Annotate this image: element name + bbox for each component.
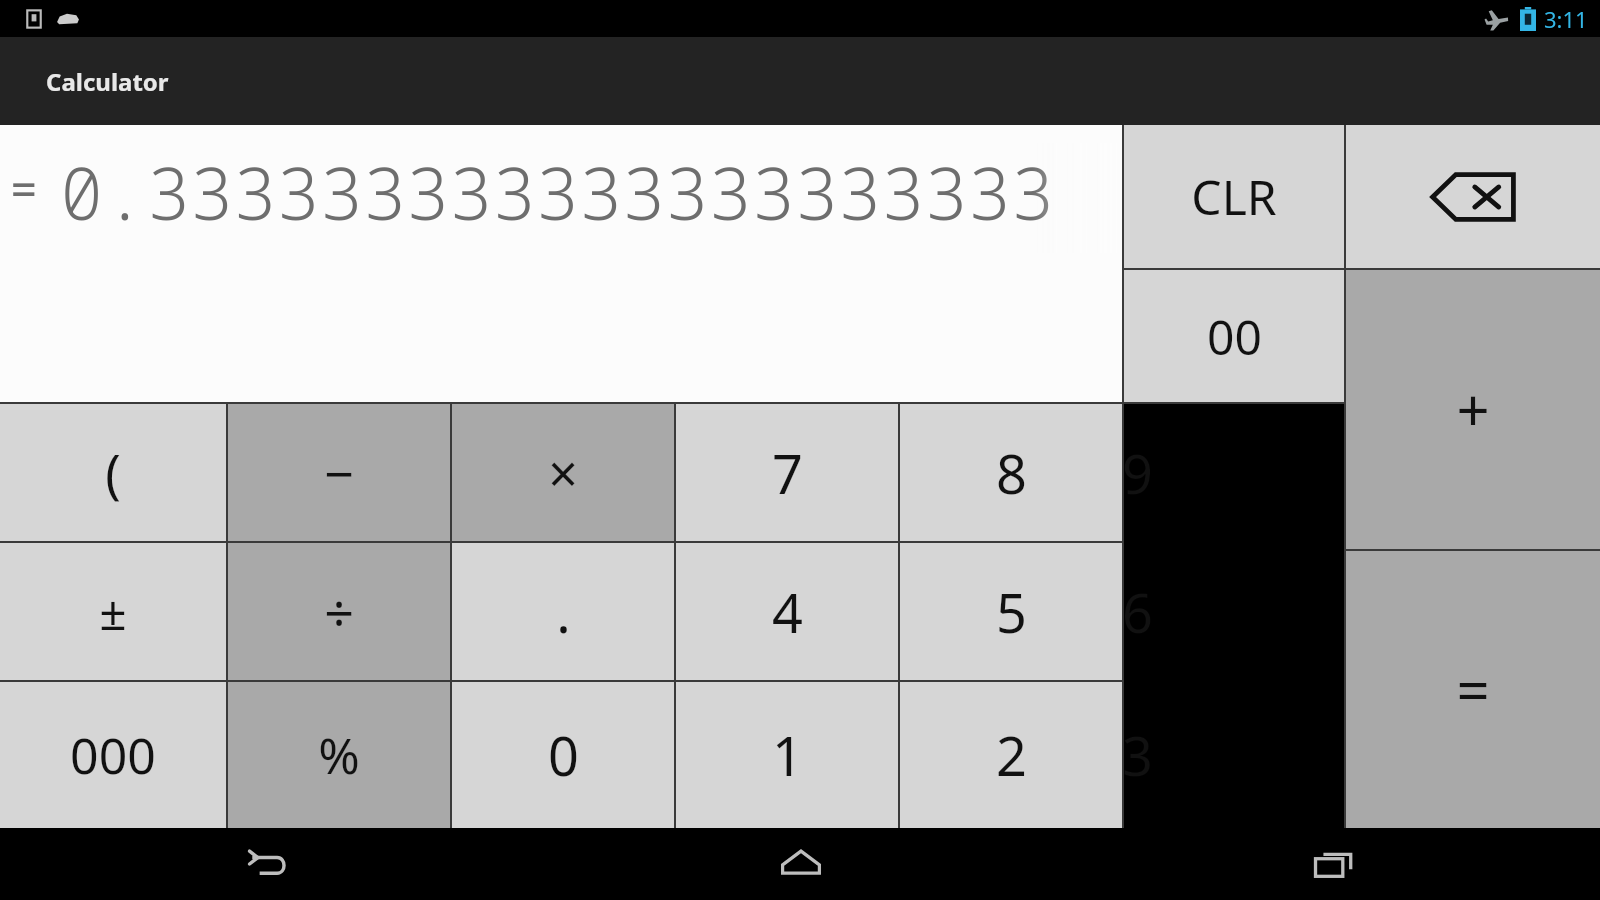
staticText: 2 <box>996 718 1027 792</box>
staticText: × <box>548 437 578 508</box>
button[interactable]: 0 <box>452 682 674 828</box>
staticText: 8 <box>996 436 1027 510</box>
button[interactable]: 8 <box>900 404 1122 541</box>
button[interactable]: Home <box>534 828 1067 900</box>
staticText: ÷ <box>324 576 354 647</box>
staticText: 4 <box>772 575 803 649</box>
button[interactable]: CLR <box>1124 125 1344 268</box>
button[interactable]: Back <box>0 828 534 900</box>
staticText: Calculator <box>46 65 169 98</box>
button[interactable]: 000 <box>0 682 226 828</box>
staticText: 1 <box>772 718 803 792</box>
button[interactable]: Recent apps <box>1067 828 1600 900</box>
button[interactable]: 2 <box>900 682 1122 828</box>
staticText: 00 <box>1207 304 1262 369</box>
button[interactable]: = <box>0 125 1122 402</box>
button[interactable]: 5 <box>900 543 1122 680</box>
button[interactable]: 1 <box>676 682 898 828</box>
button[interactable]: Divide <box>228 543 450 680</box>
staticText: % <box>318 721 360 789</box>
button[interactable]: 00 <box>1124 270 1344 402</box>
button[interactable]: Plus minus <box>0 543 226 680</box>
staticText: 3:11 <box>1544 4 1588 34</box>
button[interactable]: 7 <box>676 404 898 541</box>
staticText: ( <box>105 437 121 508</box>
staticText: + <box>1456 370 1490 449</box>
staticText: = <box>10 157 38 220</box>
button[interactable]: Multiply <box>452 404 674 541</box>
staticText: 0 <box>548 718 579 792</box>
button[interactable]: Equals <box>1346 551 1600 828</box>
staticText: = <box>1456 650 1490 729</box>
staticText: ± <box>99 579 127 644</box>
staticText: 5 <box>996 575 1027 649</box>
staticText: CLR <box>1191 164 1277 229</box>
button[interactable]: 4 <box>676 543 898 680</box>
staticText: − <box>324 437 354 508</box>
staticText: 7 <box>772 436 803 510</box>
button[interactable]: Minus <box>228 404 450 541</box>
staticText: . <box>556 575 571 649</box>
button[interactable]: Percent <box>228 682 450 828</box>
staticText: 000 <box>70 721 156 789</box>
button[interactable]: Plus <box>1346 270 1600 549</box>
button[interactable]: . <box>452 543 674 680</box>
button[interactable]: Backspace <box>1346 125 1600 268</box>
staticText: 0.333333333333333333333 <box>60 143 1054 241</box>
button[interactable]: ( <box>0 404 226 541</box>
